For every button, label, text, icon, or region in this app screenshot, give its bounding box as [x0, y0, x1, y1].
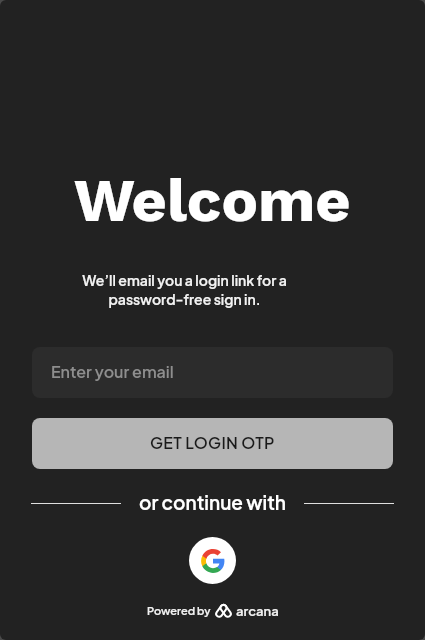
- staticText: We’ll email you a login link for a passw…: [82, 271, 287, 309]
- button[interactable]: GET LOGIN OTP: [32, 418, 393, 469]
- button[interactable]: Enter your email: [32, 347, 393, 398]
- staticText: Welcome: [74, 164, 351, 236]
- staticText: Powered by: [147, 604, 211, 618]
- staticText: Enter your email: [51, 361, 174, 381]
- button[interactable]: Sign in with Google: [189, 537, 236, 584]
- staticText: GET LOGIN OTP: [150, 432, 275, 452]
- staticText: arcana: [236, 603, 279, 619]
- staticText: or continue with: [139, 490, 286, 511]
